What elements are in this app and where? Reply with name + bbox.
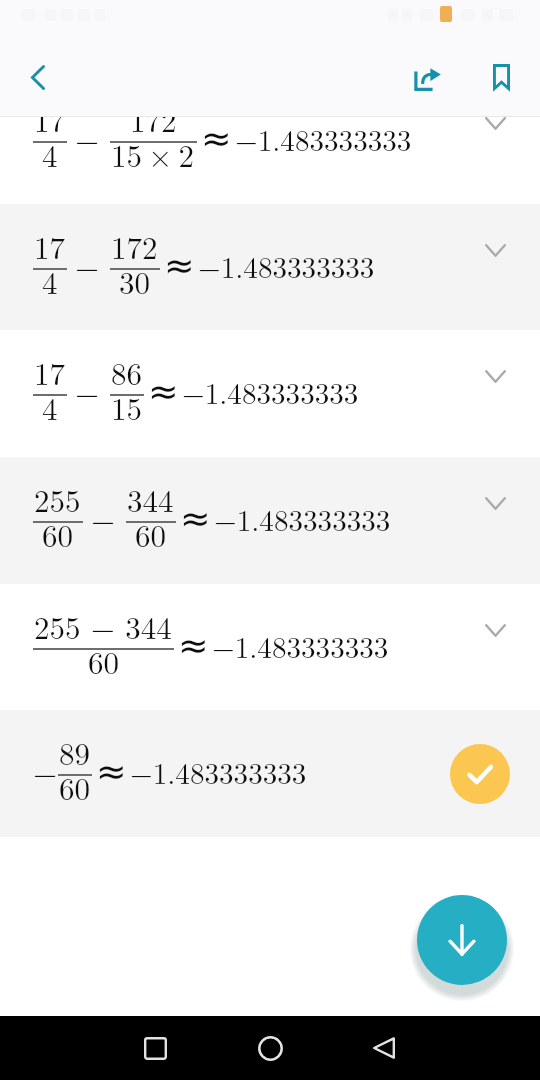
staticText: − (33, 749, 58, 793)
button[interactable]: 17 (0, 204, 540, 330)
button[interactable]: Home (240, 1018, 300, 1078)
button[interactable]: Back (354, 1018, 414, 1078)
button[interactable]: Share (401, 52, 453, 104)
staticText: 255 (34, 477, 81, 521)
button[interactable]: Back (12, 51, 64, 103)
staticText: 172 (130, 117, 177, 141)
staticText: − (91, 496, 116, 540)
button[interactable]: − (0, 710, 540, 837)
staticText: 4 (42, 259, 58, 303)
staticText: ≈ (96, 750, 127, 793)
staticText: 17 (34, 350, 65, 394)
button[interactable]: Solution found (450, 744, 510, 804)
button[interactable]: Expand step (475, 610, 515, 650)
staticText: 4 (42, 132, 58, 176)
staticText: 60 (135, 512, 166, 556)
staticText: −1.483333333 (130, 751, 307, 792)
staticText: 17 (34, 224, 65, 268)
staticText: ≈ (148, 370, 179, 413)
button[interactable]: Bookmark (475, 51, 527, 103)
button[interactable]: Expand step (475, 483, 515, 523)
staticText: 17 (34, 117, 65, 141)
staticText: −1.483333333 (198, 245, 375, 286)
staticText: − (75, 369, 100, 413)
staticText: 30 (119, 259, 150, 303)
button[interactable]: Expand step (475, 356, 515, 396)
button[interactable]: Expand step (475, 117, 515, 143)
staticText: −1.483333333 (235, 118, 412, 159)
staticText: 60 (88, 639, 119, 683)
staticText: ≈ (201, 117, 232, 160)
staticText: −1.483333333 (212, 625, 389, 666)
staticText: 89 (59, 730, 90, 774)
staticText: 255 − 344 (34, 604, 172, 648)
staticText: −1.483333333 (214, 498, 391, 539)
staticText: − (75, 243, 100, 287)
staticText: 172 (111, 224, 158, 268)
staticText: − (75, 117, 100, 160)
staticText: 4 (42, 385, 58, 429)
staticText: ≈ (178, 624, 209, 667)
button[interactable]: 255 − 344 (0, 584, 540, 710)
staticText: 60 (59, 765, 90, 809)
button[interactable]: 255 (0, 457, 540, 584)
staticText: 86 (111, 350, 142, 394)
staticText: 15 (111, 385, 142, 429)
staticText: 15 × 2 (111, 132, 195, 176)
button[interactable]: 17 (0, 117, 540, 204)
staticText: ≈ (180, 497, 211, 540)
button[interactable]: Next step (417, 895, 507, 985)
staticText: 344 (127, 477, 174, 521)
staticText: −1.483333333 (182, 371, 359, 412)
button[interactable]: 17 (0, 330, 540, 457)
staticText: ≈ (164, 244, 195, 287)
button[interactable]: Expand step (475, 230, 515, 270)
button[interactable]: Recent apps (125, 1018, 185, 1078)
staticText: 60 (42, 512, 73, 556)
